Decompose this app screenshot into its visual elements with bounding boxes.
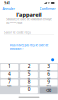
staticText: Annuler [16,44,58,74]
staticText: 9:41 [28,7,58,33]
button[interactable]: Annuler [16,44,58,74]
